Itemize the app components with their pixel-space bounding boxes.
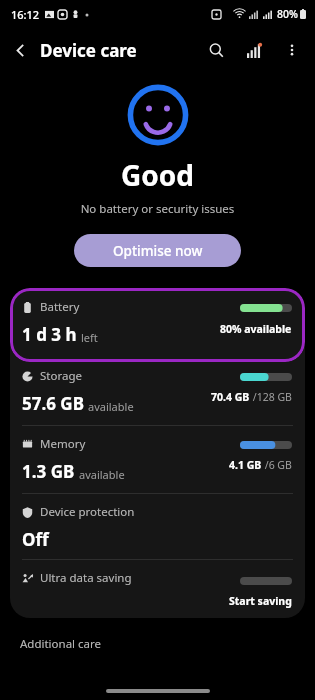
button[interactable]: Back <box>0 30 40 70</box>
staticText: Good <box>0 156 315 194</box>
staticText: 1.3 GB <box>22 460 75 483</box>
button[interactable]: More options <box>273 31 311 69</box>
staticText: /128 GB <box>250 390 292 404</box>
staticText: available <box>79 467 125 482</box>
button[interactable]: Battery <box>10 288 305 362</box>
button[interactable]: Statistics <box>235 31 273 69</box>
staticText: 57.6 GB <box>22 392 84 415</box>
button[interactable]: Ultra data saving <box>10 560 305 618</box>
staticText: 70.4 GB <box>211 390 250 404</box>
staticText: Additional care <box>20 636 102 652</box>
staticText: Ultra data saving <box>40 570 132 586</box>
staticText: Memory <box>40 436 86 452</box>
staticText: 1 d 3 h <box>22 323 77 346</box>
staticText: 4.1 GB <box>229 458 262 472</box>
button[interactable]: Device protection <box>10 494 305 560</box>
staticText: Storage <box>40 368 82 384</box>
staticText: 16:12 <box>11 7 40 22</box>
button[interactable]: Memory <box>10 426 305 494</box>
staticText: /6 GB <box>262 458 292 472</box>
staticText: No battery or security issues <box>0 201 315 217</box>
staticText: Battery <box>40 299 80 315</box>
staticText: Off <box>22 528 49 551</box>
staticText: available <box>88 399 134 414</box>
staticText: Start saving <box>229 594 292 608</box>
staticText: Optimise now <box>113 242 203 260</box>
button[interactable]: Search <box>197 31 235 69</box>
button[interactable]: Optimise now <box>74 234 241 267</box>
staticText: Device care <box>40 39 137 62</box>
staticText: left <box>81 330 98 345</box>
staticText: 80% available <box>220 322 292 336</box>
button[interactable]: Storage <box>10 358 305 426</box>
staticText: Device protection <box>40 504 135 520</box>
staticText: 80% <box>277 7 298 21</box>
